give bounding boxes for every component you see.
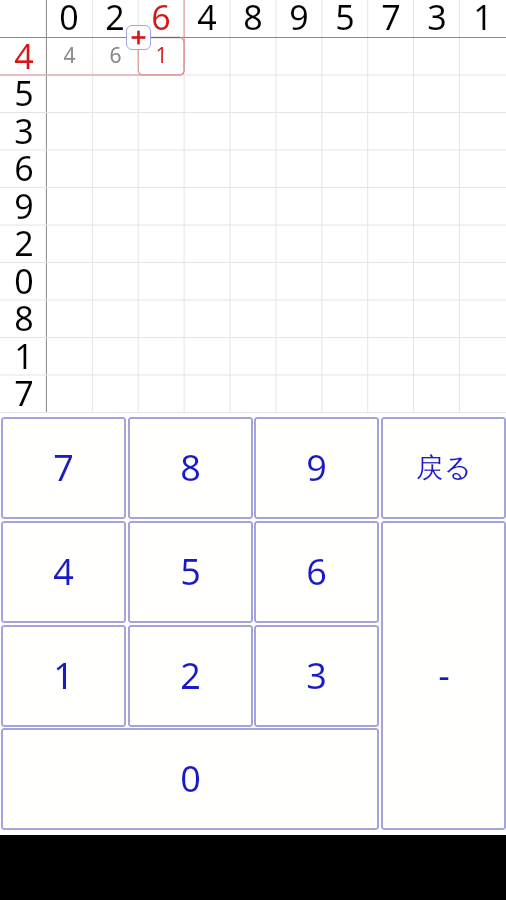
staticText: 4 [197, 0, 217, 40]
staticText: 2 [180, 651, 201, 700]
button[interactable]: 2 [128, 625, 253, 727]
staticText: 9 [289, 0, 309, 40]
staticText: 8 [243, 0, 263, 40]
staticText: 1 [473, 0, 493, 40]
staticText: 1 [53, 651, 74, 700]
staticText: 1 [155, 41, 168, 70]
staticText: 2 [14, 220, 34, 266]
staticText: 4 [53, 547, 74, 596]
staticText: 4 [63, 41, 76, 70]
staticText: 6 [109, 41, 122, 70]
staticText: 2 [105, 0, 125, 40]
staticText: 6 [306, 547, 327, 596]
staticText: 1 [14, 333, 34, 379]
staticText: 7 [14, 370, 34, 416]
button[interactable]: 8 [128, 417, 253, 519]
staticText: 5 [180, 547, 201, 596]
button[interactable]: 3 [254, 625, 379, 727]
button[interactable]: - [381, 521, 506, 830]
staticText: 6 [14, 145, 34, 191]
staticText: 4 [14, 33, 34, 79]
button[interactable]: 6 [254, 521, 379, 623]
staticText: 3 [427, 0, 447, 40]
button[interactable]: Addition [126, 25, 151, 50]
button[interactable]: 1 [1, 625, 126, 727]
button[interactable]: 戻る [381, 417, 506, 519]
staticText: 3 [306, 651, 327, 700]
staticText: 3 [14, 108, 34, 154]
staticText: 8 [14, 295, 34, 341]
button[interactable]: 0 [1, 728, 379, 830]
staticText: 9 [306, 443, 327, 492]
staticText: - [438, 650, 450, 699]
staticText: 7 [381, 0, 401, 40]
button[interactable]: 9 [254, 417, 379, 519]
staticText: 8 [180, 443, 201, 492]
staticText: 9 [14, 183, 34, 229]
staticText: 5 [335, 0, 355, 40]
staticText: 7 [53, 443, 74, 492]
staticText: 戻る [416, 451, 472, 486]
staticText: 0 [59, 0, 79, 40]
button[interactable]: 7 [1, 417, 126, 519]
staticText: 0 [180, 754, 201, 803]
staticText: 0 [14, 258, 34, 304]
staticText: 5 [14, 70, 34, 116]
staticText: 6 [151, 0, 171, 40]
button[interactable]: 4 [1, 521, 126, 623]
button[interactable]: 5 [128, 521, 253, 623]
